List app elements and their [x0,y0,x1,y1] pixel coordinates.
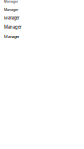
staticText: Manager [4,16,20,20]
staticText: Manager [4,7,18,12]
staticText: Manager [4,0,18,3]
staticText: Manager [4,34,19,39]
staticText: Manager [4,25,22,30]
